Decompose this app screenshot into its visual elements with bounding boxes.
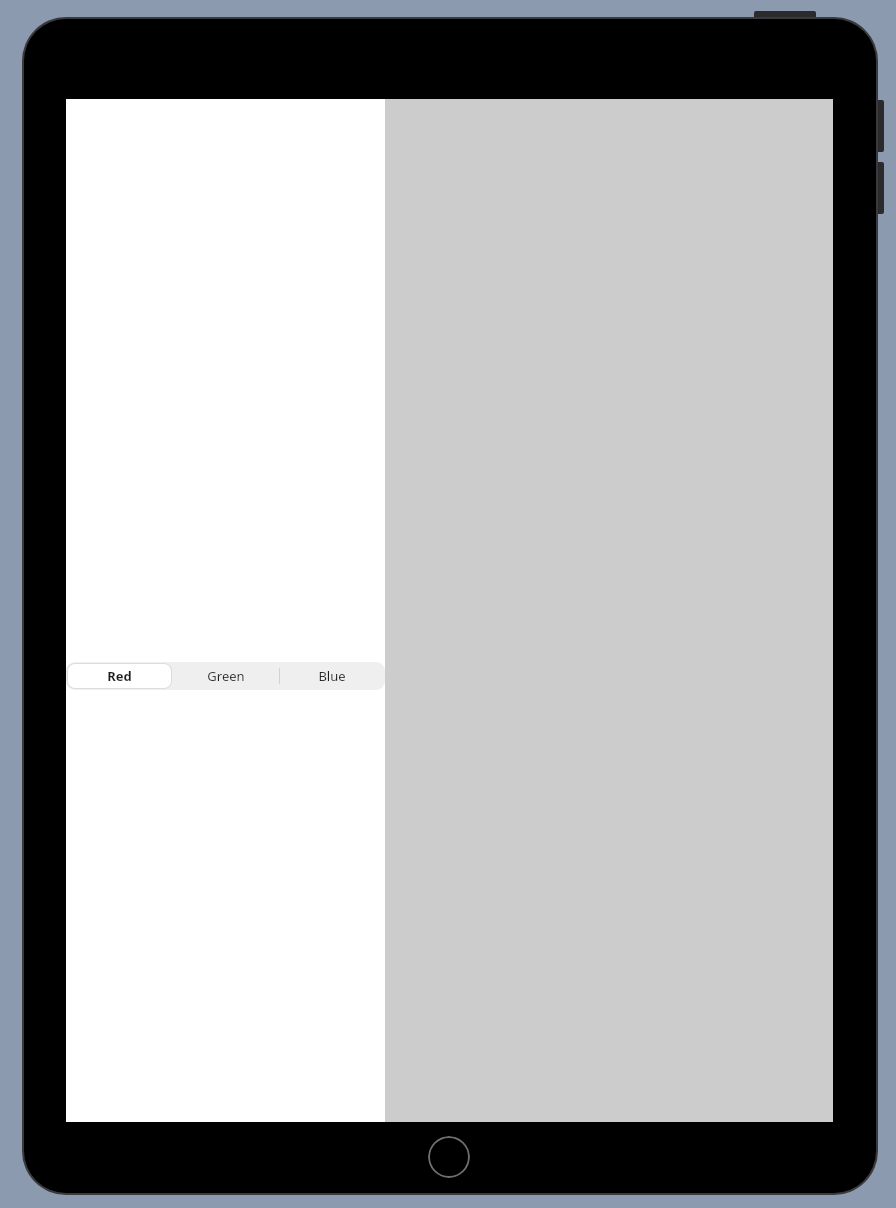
staticText: Green <box>207 667 245 685</box>
button[interactable]: Home <box>428 1136 470 1178</box>
staticText: Red <box>107 667 132 685</box>
staticText: Blue <box>318 667 346 685</box>
button[interactable]: Red <box>66 662 173 690</box>
button[interactable]: Blue <box>279 662 385 690</box>
button[interactable]: Green <box>173 662 279 690</box>
